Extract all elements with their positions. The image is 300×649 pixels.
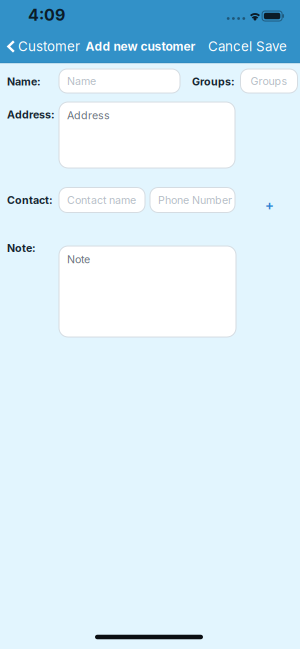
button[interactable]: Name [59,69,180,93]
staticText: Note: [7,242,36,254]
staticText: + [265,197,274,213]
button[interactable]: Save [256,39,287,54]
button[interactable]: Note [59,246,236,337]
staticText: Contact name [67,194,136,206]
staticText: Address: [7,108,55,121]
staticText: Name: [7,75,41,88]
staticText: Groups: [192,75,235,88]
staticText: Add new customer [85,39,195,54]
staticText: Note [67,253,90,266]
staticText: Contact: [7,194,53,206]
staticText: Name [67,75,96,87]
button[interactable]: Back [7,39,80,54]
button[interactable]: Address [59,102,235,168]
button[interactable]: Groups [240,69,297,93]
staticText: Phone Number [158,194,232,206]
staticText: Cancel [208,39,252,54]
button[interactable]: Add contact [265,197,274,213]
staticText: Save [256,39,287,54]
button[interactable]: Phone Number [150,187,235,212]
staticText: Address [67,109,110,122]
button[interactable]: Contact name [59,187,145,212]
button[interactable]: Cancel [208,39,252,54]
staticText: Customer [18,39,80,54]
staticText: Groups [250,75,287,87]
staticText: 4:09 [28,6,65,24]
